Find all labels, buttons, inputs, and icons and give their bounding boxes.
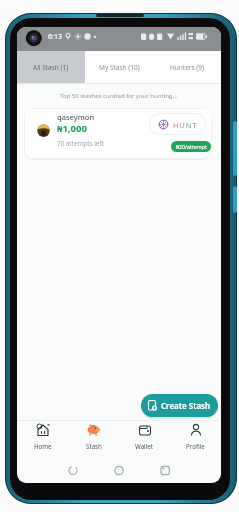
button[interactable]: Home [17,421,68,450]
button[interactable]: Wallet [119,421,170,450]
staticText: 76 attempts left [57,139,104,148]
button[interactable]: qaseymon [24,108,212,159]
staticText: All Stash (1) [33,63,69,72]
staticText: Wallet [135,442,154,450]
button[interactable]: All Stash (1) [17,51,85,84]
staticText: My Stash (10) [99,63,140,72]
button[interactable]: My Stash (10) [85,51,153,84]
staticText: ₦20/attempt [176,143,207,150]
staticText: 6:13 [48,32,62,42]
staticText: Profile [186,442,205,450]
staticText: Stash [86,442,102,450]
button[interactable]: Stash [68,421,119,450]
staticText: Top 50 stashes curated for your hunting.… [60,92,178,100]
button[interactable]: Create Stash [141,394,218,417]
button[interactable]: HUNT [149,113,206,135]
staticText: ₦1,000 [57,122,87,135]
button[interactable]: Hunters (9) [153,51,221,84]
staticText: qaseymon [57,112,95,122]
staticText: Hunters (9) [170,63,204,72]
button[interactable]: Profile [170,421,221,450]
staticText: Home [34,442,52,450]
staticText: HUNT [173,120,198,130]
staticText: Create Stash [161,400,211,411]
